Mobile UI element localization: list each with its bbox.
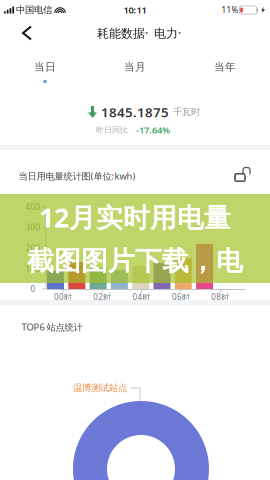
staticText: 08时 (211, 292, 229, 302)
staticText: 昨日同比 (96, 125, 128, 135)
staticText: -17.64% (136, 124, 170, 136)
staticText: 中国电信 (16, 4, 52, 16)
button[interactable]: 当年 (180, 48, 270, 90)
staticText: 100 (25, 264, 40, 274)
staticText: 当日 (34, 60, 56, 73)
staticText: TOP6 站点统计 (21, 321, 82, 333)
staticText: 02时 (93, 292, 111, 302)
staticText: 千瓦时 (173, 106, 200, 118)
staticText: 12月实时用电量 (39, 199, 231, 235)
staticText: 截图图片下载，电 (27, 245, 243, 278)
staticText: 300 (25, 222, 40, 233)
staticText: 当日用电量统计图(单位:kwh) (18, 170, 135, 182)
staticText: 当月 (124, 60, 146, 73)
staticText: 当年 (214, 60, 236, 73)
staticText: 400 (25, 202, 40, 212)
button[interactable]: Lock orientation (231, 163, 253, 185)
button[interactable]: 当月 (90, 48, 180, 90)
staticText: 1845.1875 (101, 103, 169, 121)
button[interactable]: 当日 (0, 48, 90, 90)
staticText: 耗能数据· 电力· (97, 25, 181, 41)
staticText: 10:11 (123, 4, 146, 16)
staticText: 06时 (172, 292, 190, 302)
staticText: 200 (25, 243, 40, 253)
button[interactable]: Back (11, 18, 43, 48)
staticText: 0 (30, 284, 35, 294)
staticText: 温博测试站点 (73, 382, 127, 394)
staticText: 04时 (133, 292, 151, 302)
staticText: 00时 (54, 292, 72, 302)
staticText: 11% (221, 5, 238, 15)
